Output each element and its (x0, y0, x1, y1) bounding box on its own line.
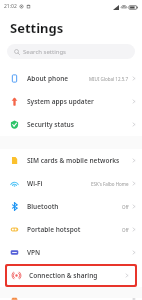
staticText: About phone (27, 74, 69, 83)
staticText: SIM cards & mobile networks (27, 156, 120, 165)
staticText: Settings (10, 19, 64, 37)
button[interactable]: Portable hotspot (0, 218, 142, 241)
button[interactable]: Lock screen (0, 298, 142, 300)
staticText: Off (122, 227, 129, 233)
button[interactable]: About phone (0, 67, 142, 90)
staticText: Connection & sharing (29, 271, 98, 280)
button[interactable]: Security status (0, 113, 142, 136)
button[interactable]: System apps updater (0, 90, 142, 113)
button[interactable]: Search settings (7, 44, 135, 59)
staticText: Security status (27, 120, 74, 129)
staticText: 21:02 (4, 3, 17, 10)
button[interactable]: Bluetooth (0, 195, 142, 218)
staticText: Portable hotspot (27, 225, 81, 234)
button[interactable]: SIM cards & mobile networks (0, 149, 142, 172)
staticText: Bluetooth (27, 202, 59, 211)
staticText: Search settings (23, 48, 66, 56)
staticText: Off (122, 204, 129, 210)
staticText: VPN (27, 248, 41, 257)
staticText: System apps updater (27, 97, 94, 106)
staticText: MIUI Global 12.5.7 (89, 76, 129, 82)
button[interactable]: Wi-Fi (0, 172, 142, 195)
staticText: ESK's Falbo Home (91, 181, 129, 187)
button[interactable]: VPN (0, 241, 142, 264)
staticText: Wi-Fi (27, 179, 43, 188)
button[interactable]: Connection & sharing (7, 266, 135, 285)
